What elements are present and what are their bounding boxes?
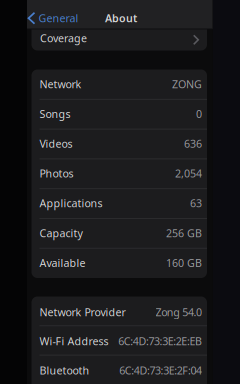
staticText: Applications [39, 196, 102, 210]
staticText: 160 GB [166, 256, 202, 270]
staticText: Capacity [39, 226, 82, 240]
staticText: 6C:4D:73:3E:2E:EB [118, 334, 202, 348]
staticText: ZONG [172, 77, 202, 91]
button[interactable]: Back [28, 6, 90, 30]
staticText: Photos [39, 166, 73, 180]
staticText: Wi-Fi Address [39, 334, 108, 348]
staticText: 63 [190, 196, 202, 210]
button[interactable]: Coverage [31, 23, 207, 50]
staticText: 636 [184, 136, 202, 151]
staticText: General [38, 11, 78, 25]
staticText: Network [39, 77, 81, 91]
staticText: Videos [39, 136, 72, 151]
staticText: Available [39, 256, 85, 270]
staticText: Coverage [40, 31, 87, 45]
staticText: About [105, 11, 137, 25]
staticText: Zong 54.0 [156, 305, 202, 319]
staticText: Bluetooth [39, 363, 89, 377]
staticText: Songs [39, 107, 70, 121]
staticText: Network Provider [39, 305, 125, 319]
staticText: 2,054 [175, 166, 202, 180]
staticText: 6C:4D:73:3E:2F:04 [119, 363, 202, 377]
staticText: 0 [196, 107, 202, 121]
staticText: 256 GB [166, 226, 202, 240]
